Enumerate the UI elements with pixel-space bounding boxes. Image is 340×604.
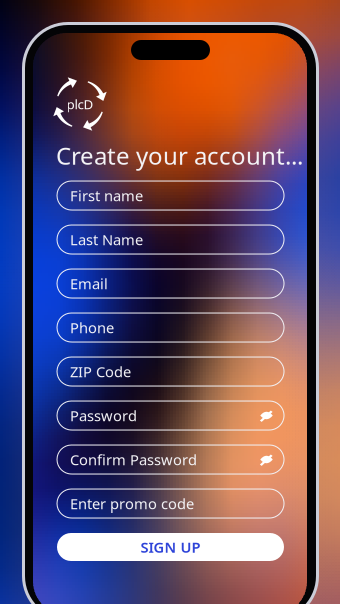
button[interactable]: Email bbox=[57, 269, 284, 298]
staticText: Phone bbox=[70, 318, 114, 337]
staticText: Confirm Password bbox=[70, 450, 197, 469]
staticText: Enter promo code bbox=[70, 494, 194, 513]
button[interactable]: Password bbox=[57, 401, 284, 430]
staticText: SIGN UP bbox=[140, 537, 200, 557]
button[interactable]: First name bbox=[57, 181, 284, 210]
button[interactable]: SIGN UP bbox=[57, 533, 284, 561]
staticText: plcD bbox=[66, 95, 93, 113]
staticText: Email bbox=[70, 274, 108, 293]
button[interactable]: Enter promo code bbox=[57, 489, 284, 518]
staticText: Password bbox=[70, 406, 137, 425]
button[interactable]: ZIP Code bbox=[57, 357, 284, 386]
button[interactable]: Last Name bbox=[57, 225, 284, 254]
staticText: Create your account... bbox=[56, 140, 303, 171]
button[interactable]: Confirm Password bbox=[57, 445, 284, 474]
staticText: ZIP Code bbox=[70, 362, 131, 381]
staticText: First name bbox=[70, 186, 143, 205]
staticText: Last Name bbox=[70, 230, 143, 249]
button[interactable]: Phone bbox=[57, 313, 284, 342]
